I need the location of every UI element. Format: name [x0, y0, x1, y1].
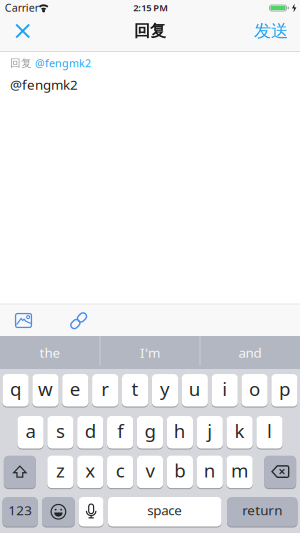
button[interactable]: and — [200, 336, 300, 369]
staticText: v — [145, 458, 154, 483]
button[interactable]: w — [32, 373, 59, 407]
button[interactable]: n — [197, 455, 223, 489]
button[interactable]: j — [197, 415, 223, 449]
staticText: y — [160, 376, 170, 401]
staticText: x — [85, 458, 95, 483]
button[interactable]: Emoji — [42, 496, 75, 527]
button[interactable]: return — [227, 496, 297, 527]
button[interactable]: t — [122, 373, 148, 407]
staticText: u — [189, 376, 201, 401]
staticText: @fengmk2 — [35, 56, 91, 70]
staticText: s — [56, 418, 65, 443]
staticText: j — [207, 418, 212, 443]
staticText: and — [238, 344, 261, 361]
button[interactable]: l — [256, 415, 283, 449]
staticText: d — [85, 418, 96, 443]
button[interactable]: space — [108, 496, 221, 527]
button[interactable]: m — [226, 455, 253, 489]
staticText: b — [174, 458, 185, 483]
button[interactable]: q — [2, 373, 29, 407]
staticText: the — [39, 344, 60, 361]
staticText: k — [235, 418, 245, 443]
staticText: n — [204, 458, 216, 483]
button[interactable]: 123 — [2, 496, 38, 527]
button[interactable]: k — [226, 415, 253, 449]
button[interactable]: Delete — [264, 455, 296, 489]
staticText: f — [117, 418, 123, 443]
button[interactable]: y — [152, 373, 178, 407]
staticText: z — [56, 458, 65, 483]
staticText: 123 — [8, 501, 32, 519]
button[interactable]: Dictate — [79, 496, 103, 527]
button[interactable]: Close — [5, 13, 41, 49]
button[interactable]: b — [167, 455, 193, 489]
button[interactable]: 发送 — [246, 13, 296, 49]
button[interactable]: v — [137, 455, 163, 489]
staticText: 发送 — [254, 20, 288, 42]
staticText: o — [249, 376, 260, 401]
button[interactable]: p — [271, 373, 297, 407]
button[interactable]: o — [241, 373, 268, 407]
button[interactable]: I'm — [100, 336, 200, 369]
staticText: space — [147, 501, 182, 519]
staticText: c — [116, 458, 125, 483]
staticText: e — [70, 376, 81, 401]
button[interactable]: r — [92, 373, 118, 407]
staticText: @fengmk2 — [10, 76, 78, 93]
staticText: p — [279, 376, 290, 401]
button[interactable]: Insert link — [64, 305, 94, 336]
staticText: g — [144, 418, 155, 443]
staticText: r — [101, 376, 109, 401]
button[interactable]: a — [17, 415, 44, 449]
button[interactable]: s — [47, 415, 73, 449]
staticText: m — [231, 458, 248, 483]
staticText: 回复 — [10, 56, 32, 70]
button[interactable]: d — [77, 415, 103, 449]
staticText: I'm — [140, 344, 160, 361]
staticText: h — [174, 418, 186, 443]
button[interactable]: z — [47, 455, 73, 489]
staticText: Carrier — [5, 1, 39, 15]
staticText: t — [132, 376, 139, 401]
button[interactable]: the — [0, 336, 100, 369]
button[interactable]: x — [77, 455, 103, 489]
staticText: l — [267, 418, 272, 443]
button[interactable]: c — [107, 455, 133, 489]
staticText: 2:15 PM — [133, 1, 168, 14]
button[interactable]: Insert photo — [8, 305, 38, 336]
button[interactable]: h — [167, 415, 193, 449]
staticText: w — [38, 376, 53, 401]
staticText: return — [242, 501, 282, 519]
staticText: i — [222, 376, 227, 401]
button[interactable]: f — [107, 415, 133, 449]
button[interactable]: g — [137, 415, 163, 449]
staticText: a — [25, 418, 35, 443]
staticText: q — [10, 376, 21, 401]
staticText: 回复 — [134, 21, 166, 41]
button[interactable]: u — [182, 373, 208, 407]
button[interactable]: Shift — [4, 455, 36, 489]
button[interactable]: i — [212, 373, 238, 407]
button[interactable]: e — [62, 373, 88, 407]
